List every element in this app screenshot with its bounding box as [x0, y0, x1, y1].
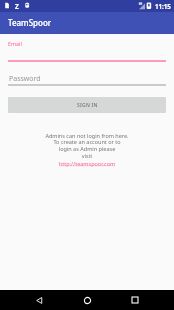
button[interactable]: Back [29, 290, 49, 310]
button[interactable]: Recent apps [125, 290, 145, 310]
button[interactable]: Home [77, 290, 97, 310]
staticText: Admins can not login from here. To creat… [0, 132, 174, 160]
staticText: 11:15 [155, 2, 171, 10]
staticText: Email [8, 40, 22, 47]
staticText: SIGN IN [77, 102, 98, 109]
button[interactable]: http://teamspoor.com [0, 160, 174, 167]
button[interactable]: SIGN IN [8, 97, 166, 113]
staticText: Z [15, 2, 19, 11]
staticText: TeamSpoor [8, 17, 52, 28]
staticText: Password [9, 74, 41, 84]
